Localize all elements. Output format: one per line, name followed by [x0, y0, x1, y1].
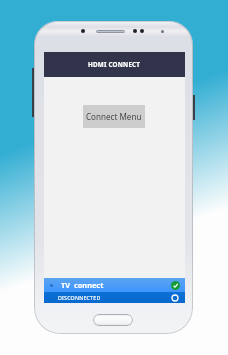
- button[interactable]: DISCONNECTED: [44, 292, 185, 303]
- button[interactable]: TV connect: [44, 278, 185, 292]
- staticText: Connect Menu: [86, 111, 142, 122]
- staticText: DISCONNECTED: [58, 294, 101, 301]
- staticText: HDMI CONNECT: [88, 60, 141, 69]
- button[interactable]: HDMI CONNECT: [44, 52, 185, 77]
- staticText: TV connect: [61, 280, 104, 290]
- button[interactable]: Home: [93, 314, 133, 326]
- button[interactable]: Connect Menu: [83, 105, 145, 128]
